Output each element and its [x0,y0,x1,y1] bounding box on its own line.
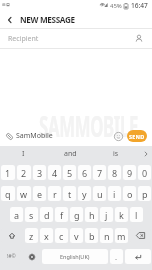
button[interactable]: English(UK) [42,249,108,264]
button[interactable]: 6 [78,165,91,180]
button[interactable]: h [85,207,98,222]
staticText: 16:47 [131,1,148,10]
button[interactable]: 7 [93,165,106,180]
button[interactable]: Insert emoji [111,129,125,143]
button[interactable]: i [108,186,121,201]
button[interactable]: 3 [33,165,46,180]
staticText: f [60,209,64,221]
button[interactable]: Add recipient from contacts [131,31,147,47]
button[interactable]: More suggestions [139,146,152,162]
staticText: English(UK) [60,253,90,260]
button[interactable]: Back [0,11,20,28]
staticText: SAMMOBILE [39,107,139,145]
staticText: 6 [82,167,88,179]
button[interactable]: Keyboard settings [23,249,40,264]
staticText: s [29,209,34,221]
staticText: 4 [52,167,58,179]
button[interactable]: k [115,207,128,222]
staticText: 3 [37,167,43,179]
button[interactable]: 5 [63,165,76,180]
button[interactable]: z [25,228,38,243]
button[interactable]: y [78,186,91,201]
staticText: m [117,230,126,242]
button[interactable]: c [55,228,68,243]
staticText: a [14,209,20,221]
button[interactable]: Shift [1,228,23,243]
button[interactable]: r [48,186,61,201]
button[interactable]: 9 [123,165,136,180]
button[interactable]: is [93,146,139,162]
button[interactable]: m [115,228,128,243]
staticText: e [37,188,43,200]
button[interactable]: Backspace [130,228,151,243]
staticText: p [142,188,148,200]
button[interactable]: j [100,207,113,222]
button[interactable]: q [1,186,15,201]
button[interactable]: o [123,186,136,201]
staticText: k [119,209,124,221]
button[interactable]: and [47,146,93,162]
staticText: b [89,230,95,242]
staticText: 9 [127,167,133,179]
staticText: SamMobile [16,131,53,141]
staticText: I [22,149,25,159]
staticText: d [44,209,50,221]
button[interactable]: 1 [1,165,15,180]
button[interactable]: 0 [138,165,151,180]
staticText: 0 [142,167,148,179]
staticText: i [113,188,116,200]
button[interactable]: SEND [127,130,147,142]
staticText: o [127,188,133,200]
button[interactable]: u [93,186,106,201]
button[interactable]: Symbols [1,249,21,264]
button[interactable]: v [70,228,83,243]
button[interactable]: I [0,146,47,162]
staticText: x [44,230,49,242]
staticText: n [104,230,110,242]
button[interactable]: Enter [125,249,151,264]
staticText: 45% [110,2,122,10]
button[interactable]: Attach file [2,129,16,143]
button[interactable]: t [63,186,76,201]
staticText: y [82,188,87,200]
staticText: h [89,209,95,221]
button[interactable]: 8 [108,165,121,180]
staticText: z [29,230,34,242]
button[interactable]: x [40,228,53,243]
staticText: Recipient [8,34,39,44]
button[interactable]: s [25,207,38,222]
button[interactable]: 4 [48,165,61,180]
button[interactable]: d [40,207,53,222]
staticText: 1 [5,167,11,179]
staticText: r [53,188,57,200]
staticText: NEW MESSAGE [20,14,75,25]
staticText: 8 [112,167,118,179]
staticText: SEND [129,133,145,140]
button[interactable]: b [85,228,98,243]
staticText: 5 [67,167,73,179]
staticText: w [20,188,28,200]
staticText: and [64,149,77,159]
button[interactable]: f [55,207,68,222]
staticText: l [135,209,138,221]
staticText: 7 [97,167,103,179]
button[interactable]: l [130,207,143,222]
button[interactable]: p [138,186,151,201]
button[interactable]: w [17,186,31,201]
staticText: q [5,188,11,200]
staticText: g [74,209,80,221]
staticText: j [105,209,108,221]
staticText: c [59,230,64,242]
button[interactable]: n [100,228,113,243]
staticText: . [115,252,118,262]
staticText: is [113,149,119,159]
staticText: t [68,188,72,200]
button[interactable]: a [10,207,23,222]
staticText: 2 [21,167,27,179]
staticText: !#© [7,253,16,260]
button[interactable]: e [33,186,46,201]
button[interactable]: g [70,207,83,222]
staticText: v [74,230,79,242]
button[interactable]: . [110,249,123,264]
button[interactable]: 2 [17,165,31,180]
